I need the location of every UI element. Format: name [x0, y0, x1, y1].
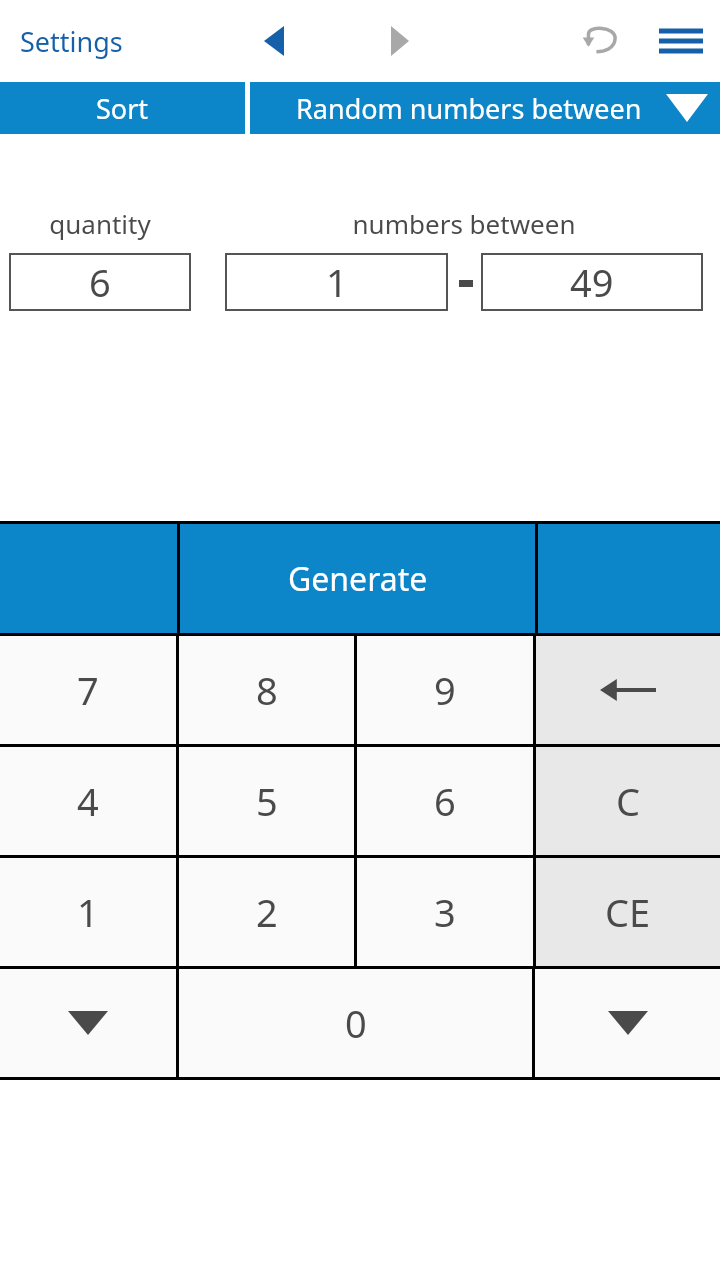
- button[interactable]: Forward: [374, 15, 426, 67]
- button[interactable]: Random numbers between: [250, 82, 720, 134]
- staticText: C: [616, 775, 641, 827]
- staticText: quantity: [9, 206, 191, 241]
- button[interactable]: 6: [9, 253, 191, 311]
- staticText: 6: [89, 256, 111, 308]
- staticText: Sort: [96, 90, 149, 127]
- button[interactable]: 2: [179, 858, 354, 966]
- button[interactable]: 8: [179, 636, 354, 744]
- staticText: Random numbers between: [296, 90, 642, 127]
- staticText: 2: [256, 886, 278, 938]
- staticText: 5: [256, 775, 278, 827]
- button[interactable]: Menu: [650, 15, 712, 67]
- button[interactable]: 1: [225, 253, 448, 311]
- staticText: 1: [326, 256, 348, 308]
- staticText: numbers between: [225, 206, 703, 241]
- button[interactable]: Back: [248, 15, 300, 67]
- button[interactable]: Sort: [0, 82, 245, 134]
- button[interactable]: 5: [179, 747, 354, 855]
- staticText: 9: [434, 664, 456, 716]
- button[interactable]: Generate: [180, 524, 535, 633]
- button[interactable]: Settings: [16, 17, 127, 66]
- staticText: CE: [605, 886, 651, 938]
- staticText: Settings: [20, 23, 123, 60]
- button[interactable]: CE: [536, 858, 720, 966]
- button[interactable]: 6: [357, 747, 533, 855]
- staticText: Generate: [288, 557, 428, 601]
- button[interactable]: C: [536, 747, 720, 855]
- staticText: 4: [77, 775, 99, 827]
- button[interactable]: 3: [357, 858, 533, 966]
- button[interactable]: Decrease max: [535, 969, 720, 1077]
- button[interactable]: 1: [0, 858, 176, 966]
- staticText: 8: [256, 664, 278, 716]
- button[interactable]: 0: [179, 969, 532, 1077]
- button[interactable]: Decrease: [0, 969, 176, 1077]
- button[interactable]: Undo: [574, 15, 626, 67]
- staticText: 1: [77, 886, 99, 938]
- button[interactable]: 49: [481, 253, 703, 311]
- button[interactable]: 9: [357, 636, 533, 744]
- staticText: 49: [570, 256, 614, 308]
- staticText: 7: [77, 664, 99, 716]
- button[interactable]: 4: [0, 747, 176, 855]
- staticText: 3: [434, 886, 456, 938]
- button[interactable]: 7: [0, 636, 176, 744]
- button[interactable]: Backspace: [536, 636, 720, 744]
- staticText: 6: [434, 775, 456, 827]
- staticText: 0: [345, 997, 367, 1049]
